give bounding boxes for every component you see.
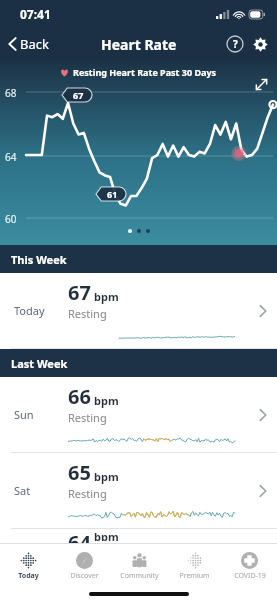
staticText: Resting Heart Rate Past 30 Days: [73, 66, 217, 78]
button[interactable]: Community: [112, 544, 167, 588]
staticText: Resting: [68, 306, 107, 321]
staticText: Sun: [14, 407, 34, 422]
staticText: This Week: [11, 252, 67, 267]
staticText: ?: [233, 37, 238, 51]
staticText: bpm: [94, 469, 119, 484]
button[interactable]: Today: [0, 273, 277, 348]
staticText: Premium: [179, 571, 210, 581]
button[interactable]: Premium: [167, 544, 222, 588]
staticText: Today: [18, 571, 39, 581]
staticText: bpm: [94, 289, 119, 304]
staticText: 65: [68, 459, 91, 486]
staticText: 60: [5, 212, 17, 226]
staticText: Sat: [14, 483, 31, 498]
staticText: 66: [68, 383, 91, 410]
staticText: Resting: [68, 486, 107, 501]
staticText: 07:41: [20, 6, 51, 22]
staticText: 68: [5, 86, 17, 100]
staticText: bpm: [94, 393, 119, 408]
button[interactable]: Today: [0, 544, 56, 588]
staticText: 67: [68, 279, 91, 306]
button[interactable]: Sat: [0, 453, 277, 528]
staticText: 64: [68, 529, 91, 543]
staticText: 61: [107, 188, 118, 200]
staticText: Last Week: [11, 356, 68, 371]
staticText: Heart Rate: [101, 35, 177, 54]
staticText: Community: [120, 571, 159, 581]
staticText: Discover: [70, 571, 99, 581]
button[interactable]: Settings: [251, 35, 269, 53]
button[interactable]: Expand chart: [251, 74, 271, 94]
staticText: Today: [14, 303, 45, 318]
staticText: Resting: [68, 410, 107, 425]
staticText: 64: [5, 150, 17, 164]
staticText: bpm: [94, 529, 119, 541]
button[interactable]: 64: [0, 529, 277, 543]
staticText: COVID-19: [234, 571, 266, 581]
staticText: 67: [73, 89, 84, 101]
button[interactable]: Back: [0, 31, 57, 57]
button[interactable]: Sun: [0, 377, 277, 452]
button[interactable]: Help: [226, 35, 244, 53]
staticText: Back: [20, 35, 49, 53]
button[interactable]: COVID-19: [222, 544, 277, 588]
button[interactable]: Discover: [56, 544, 112, 588]
